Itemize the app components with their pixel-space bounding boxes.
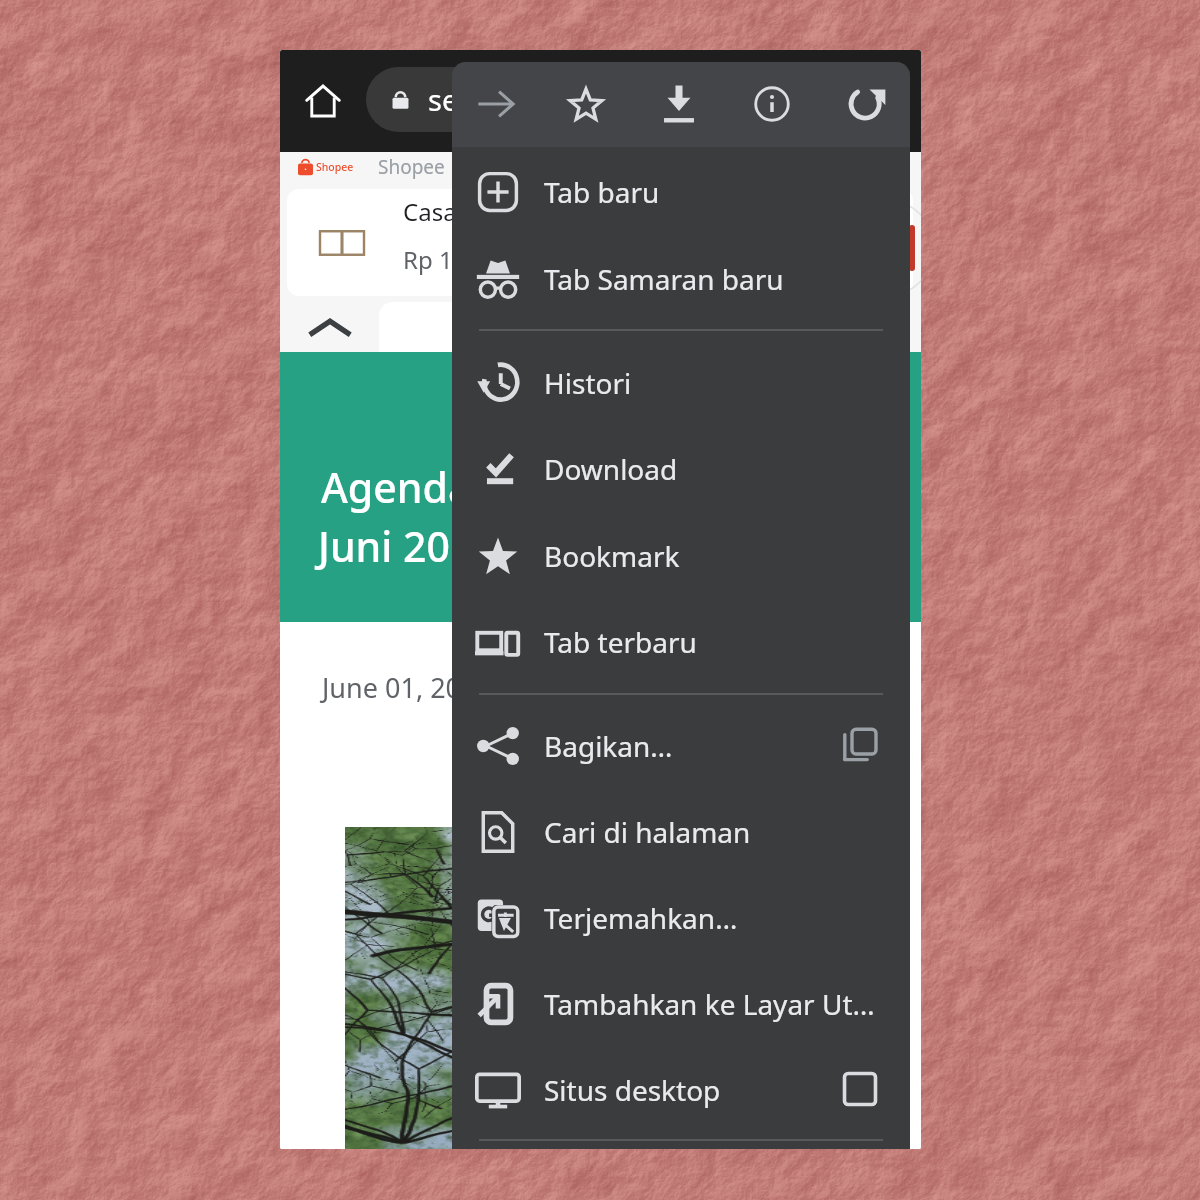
staticText: Download bbox=[544, 450, 889, 488]
button[interactable]: Tab terbaru bbox=[452, 599, 910, 685]
staticText: Juni 20 bbox=[318, 518, 450, 574]
staticText: Cari di halaman bbox=[544, 813, 889, 851]
staticText: Agenda bbox=[321, 459, 472, 515]
button[interactable]: Home bbox=[292, 70, 353, 131]
button[interactable]: Copy link bbox=[840, 726, 880, 766]
staticText: Bookmark bbox=[544, 537, 889, 575]
button[interactable]: Tab Samaran baru bbox=[452, 236, 910, 322]
staticText: Tab Samaran baru bbox=[544, 260, 889, 298]
staticText: Shopee bbox=[316, 160, 354, 174]
button[interactable]: Download bbox=[648, 73, 710, 135]
button[interactable]: Tab baru bbox=[452, 149, 910, 235]
staticText: Terjemahkan… bbox=[544, 899, 889, 937]
staticText: June 01, 20 bbox=[322, 669, 462, 706]
button[interactable]: Forward bbox=[465, 73, 527, 135]
staticText: Rp 1 bbox=[403, 243, 453, 276]
staticText: Casa bbox=[403, 195, 457, 228]
staticText: se bbox=[428, 80, 459, 119]
staticText: Situs desktop bbox=[544, 1071, 889, 1109]
button[interactable]: Cari di halaman bbox=[452, 789, 910, 875]
button[interactable]: Reload bbox=[835, 73, 897, 135]
button[interactable]: Request desktop site bbox=[842, 1071, 878, 1107]
staticText: Tab baru bbox=[544, 173, 889, 211]
staticText: Shopee bbox=[378, 154, 445, 180]
staticText: Tambahkan ke Layar Uta… bbox=[544, 985, 889, 1023]
button[interactable]: Bookmark bbox=[452, 513, 910, 599]
button[interactable]: Casa bbox=[287, 189, 913, 296]
button[interactable]: Download bbox=[452, 426, 910, 512]
button[interactable]: Situs desktop bbox=[452, 1047, 910, 1133]
button[interactable]: Bagikan… bbox=[452, 703, 910, 789]
staticText: Histori bbox=[544, 364, 889, 402]
staticText: Tab terbaru bbox=[544, 623, 889, 661]
button[interactable]: Histori bbox=[452, 340, 910, 426]
button[interactable]: Tambahkan ke Layar Uta… bbox=[452, 961, 910, 1047]
button[interactable]: Terjemahkan… bbox=[452, 875, 910, 961]
staticText: Bagikan… bbox=[544, 727, 889, 765]
button[interactable]: Search or type URL bbox=[366, 67, 796, 132]
button[interactable]: Bookmark bbox=[555, 73, 617, 135]
button[interactable]: Page info bbox=[741, 73, 803, 135]
